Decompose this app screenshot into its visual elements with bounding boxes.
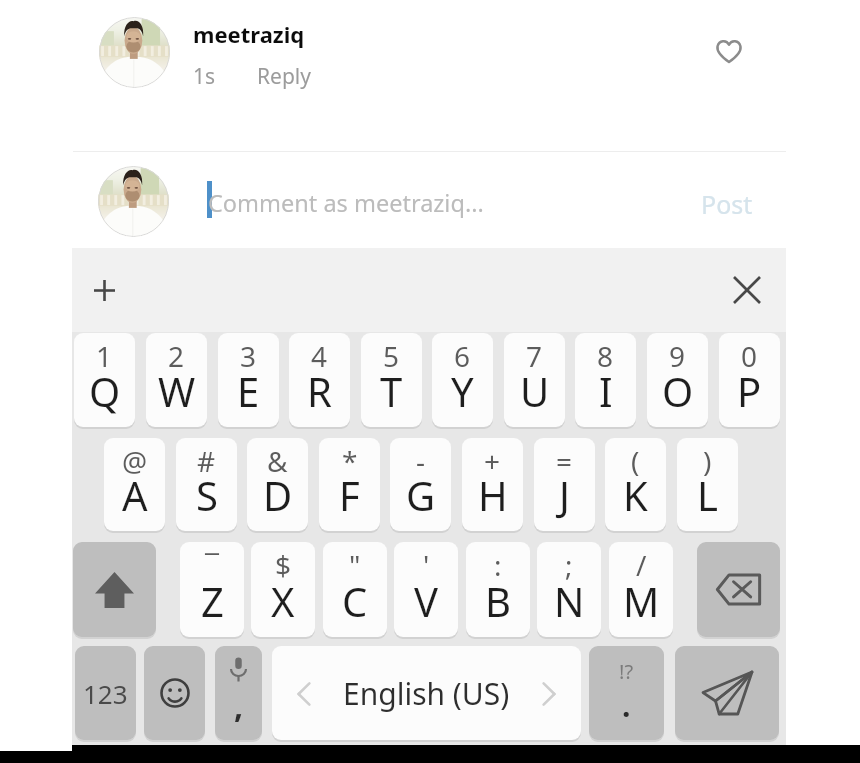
staticText: J [559, 468, 570, 522]
button[interactable]: $ [251, 542, 315, 637]
staticText: M [623, 574, 660, 628]
staticText: : [494, 546, 502, 584]
staticText: 6 [454, 337, 471, 375]
staticText: - [416, 442, 426, 480]
staticText: C [342, 574, 368, 628]
staticText: D [263, 468, 293, 522]
staticText: " [349, 546, 361, 584]
button[interactable]: / [609, 542, 673, 637]
staticText: , [234, 684, 244, 728]
button[interactable]: Post [686, 173, 768, 235]
staticText: 3 [240, 337, 257, 375]
staticText: 1s [193, 62, 216, 91]
staticText: # [197, 442, 216, 480]
button[interactable]: 123 [75, 646, 136, 740]
staticText: A [122, 468, 148, 522]
staticText: ' [423, 546, 430, 584]
button[interactable]: Space, English (US) [272, 646, 581, 740]
button[interactable]: 2 [146, 333, 207, 427]
button[interactable]: Reply [255, 58, 313, 95]
button[interactable]: Like [706, 28, 752, 74]
button[interactable]: ) [677, 438, 738, 531]
staticText: ; [565, 546, 573, 584]
staticText: @ [122, 442, 148, 480]
staticText: F [339, 468, 360, 522]
staticText: P [737, 364, 762, 418]
staticText: 123 [83, 676, 128, 711]
button[interactable]: = [534, 438, 595, 531]
staticText: 9 [669, 337, 686, 375]
button[interactable]: & [247, 438, 308, 531]
button[interactable]: 8 [575, 333, 636, 427]
button[interactable]: 0 [719, 333, 780, 427]
staticText: 8 [597, 337, 614, 375]
button[interactable]: 4 [289, 333, 350, 427]
staticText: ( [631, 442, 640, 480]
button[interactable]: Voice input [215, 646, 262, 740]
button[interactable]: Close keyboard [724, 267, 770, 313]
staticText: & [267, 442, 288, 480]
button[interactable]: Period [589, 646, 664, 740]
staticText: + [484, 442, 501, 480]
button[interactable]: Send [675, 646, 779, 740]
button[interactable]: - [390, 438, 451, 531]
staticText: X [271, 574, 295, 628]
staticText: ) [703, 442, 712, 480]
button[interactable]: Backspace [697, 542, 780, 637]
button[interactable]: 7 [504, 333, 565, 427]
staticText: G [406, 468, 436, 522]
button[interactable]: Emoji [144, 646, 205, 740]
staticText: / [636, 546, 647, 584]
staticText: Q [89, 364, 121, 418]
staticText: = [556, 442, 573, 480]
staticText: W [158, 364, 196, 418]
button[interactable]: 6 [432, 333, 493, 427]
staticText: . [622, 685, 631, 722]
button[interactable]: 3 [218, 333, 279, 427]
staticText: 4 [311, 337, 328, 375]
button[interactable]: 5 [361, 333, 422, 427]
button[interactable]: + [462, 438, 523, 531]
staticText: T [380, 364, 403, 418]
button[interactable]: * [319, 438, 380, 531]
staticText: meetraziq [193, 19, 305, 49]
button[interactable]: ( [605, 438, 666, 531]
staticText: Z [201, 574, 224, 628]
staticText: $ [275, 546, 292, 584]
staticText: ¯ [205, 546, 220, 584]
staticText: 1 [96, 337, 113, 375]
staticText: U [520, 364, 550, 418]
button[interactable]: meetraziq [193, 19, 305, 49]
staticText: Comment as meetraziq... [208, 187, 484, 219]
staticText: * [342, 442, 358, 480]
button[interactable]: : [466, 542, 530, 637]
button[interactable]: ; [537, 542, 601, 637]
staticText: B [485, 574, 511, 628]
button[interactable]: 9 [647, 333, 708, 427]
button[interactable]: # [176, 438, 237, 531]
staticText: H [478, 468, 508, 522]
button[interactable]: @ [104, 438, 165, 531]
staticText: Y [451, 364, 474, 418]
staticText: E [237, 364, 260, 418]
staticText: Post [701, 187, 753, 221]
button[interactable]: " [323, 542, 387, 637]
staticText: English (US) [343, 673, 510, 714]
staticText: 0 [741, 337, 758, 375]
staticText: K [623, 468, 648, 522]
button[interactable]: 1 [74, 333, 135, 427]
button[interactable]: Comment as meetraziq... [196, 168, 676, 236]
button[interactable]: ' [394, 542, 458, 637]
button[interactable]: meetraziq profile picture [99, 17, 170, 88]
staticText: N [554, 574, 585, 628]
staticText: L [697, 468, 718, 522]
button[interactable]: Shift [73, 542, 156, 637]
button[interactable]: Add attachment [81, 267, 127, 313]
button[interactable]: ¯ [180, 542, 244, 637]
staticText: S [196, 468, 218, 522]
staticText: Reply [257, 62, 311, 91]
staticText: O [662, 364, 694, 418]
staticText: 5 [383, 337, 400, 375]
button[interactable]: Your profile picture [98, 166, 169, 237]
staticText: 2 [168, 337, 185, 375]
